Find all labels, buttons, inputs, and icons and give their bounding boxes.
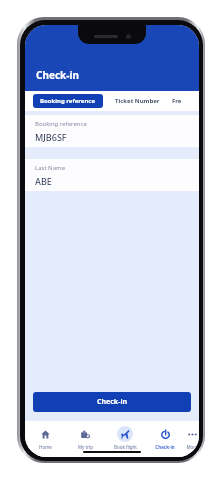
staticText: MJB6SF (35, 131, 67, 143)
staticText: Check-in (155, 444, 175, 450)
staticText: More (186, 444, 198, 450)
button[interactable]: More (185, 425, 199, 451)
staticText: Check-in (97, 397, 128, 407)
button[interactable]: Book flight (105, 425, 145, 451)
button[interactable]: Check-in (145, 425, 185, 451)
staticText: Ticket Number (115, 97, 160, 105)
staticText: Last Name (35, 164, 66, 172)
staticText: Booking reference (40, 97, 96, 105)
button[interactable]: Check-in (33, 392, 191, 412)
button[interactable]: Fre (172, 94, 182, 108)
staticText: Booking reference (35, 120, 87, 128)
staticText: Home (39, 444, 52, 450)
button[interactable]: Ticket Number (112, 94, 163, 108)
staticText: My trip (78, 444, 93, 450)
button[interactable]: Booking reference (25, 115, 199, 147)
staticText: Book flight (114, 444, 137, 450)
button[interactable]: Booking reference (33, 94, 103, 108)
button[interactable]: My trip (65, 425, 105, 451)
button[interactable]: Home (25, 425, 65, 451)
button[interactable]: Last Name (25, 159, 199, 191)
staticText: Fre (172, 97, 182, 105)
staticText: Check-in (36, 68, 79, 82)
staticText: ABE (35, 175, 52, 187)
